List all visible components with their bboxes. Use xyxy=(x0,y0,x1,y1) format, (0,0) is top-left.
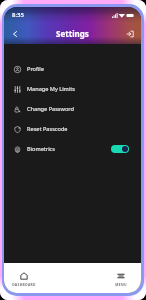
staticText: Change Password xyxy=(27,105,74,113)
staticText: Biometrics xyxy=(27,145,55,153)
staticText: Profile xyxy=(27,65,44,73)
button[interactable]: MENU xyxy=(106,263,136,293)
button[interactable]: Biometrics xyxy=(4,139,141,159)
button[interactable]: Profile xyxy=(4,59,141,79)
staticText: Settings xyxy=(56,28,89,39)
button[interactable]: DASHBOARD xyxy=(9,263,39,293)
button[interactable]: Logout xyxy=(123,27,137,41)
staticText: 8:35 xyxy=(12,11,24,19)
button[interactable]: Change Password xyxy=(4,99,141,119)
staticText: Manage My Limits xyxy=(27,85,75,93)
staticText: DASHBOARD xyxy=(12,282,36,286)
staticText: MENU xyxy=(115,282,127,286)
staticText: Reset Passcode xyxy=(27,125,68,133)
button[interactable]: Back xyxy=(8,27,22,41)
button[interactable]: Manage My Limits xyxy=(4,79,141,99)
button[interactable]: Reset Passcode xyxy=(4,119,141,139)
button[interactable]: Biometrics toggle xyxy=(111,145,129,153)
